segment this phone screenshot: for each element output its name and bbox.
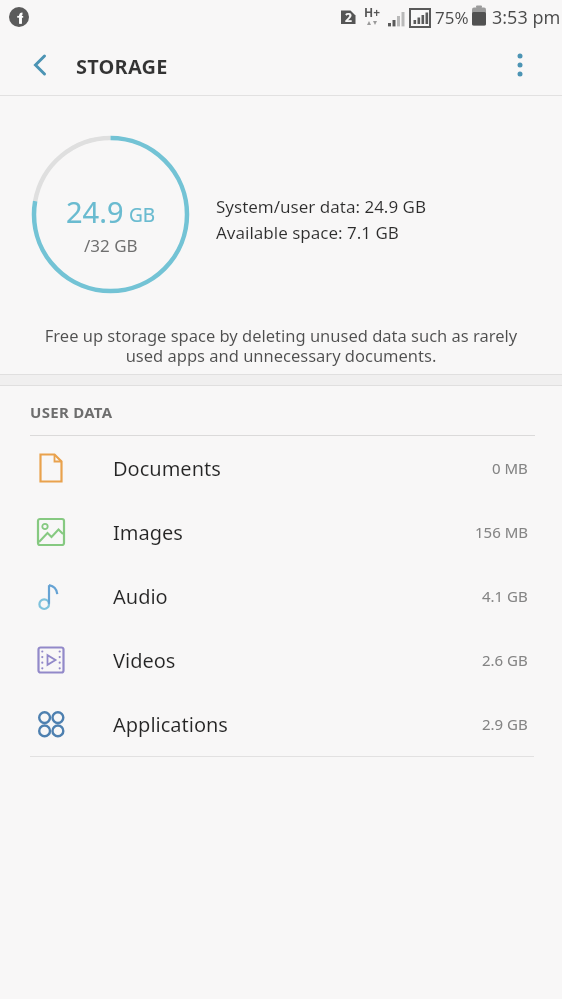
button[interactable]: Documents [0, 436, 562, 500]
button[interactable]: Applications [0, 692, 562, 756]
staticText: 75% [435, 6, 469, 29]
staticText: Images [113, 519, 183, 546]
staticText: Audio [113, 583, 168, 610]
staticText: 2 [345, 9, 352, 25]
staticText: 156 MB [475, 522, 528, 542]
button[interactable]: Videos [0, 628, 562, 692]
staticText: H+ [364, 4, 381, 20]
staticText: GB [124, 202, 156, 228]
staticText: USER DATA [30, 402, 113, 422]
staticText: 4.1 GB [482, 586, 528, 606]
staticText: 0 MB [492, 458, 528, 478]
staticText: Documents [113, 455, 221, 482]
staticText: /32 GB [84, 234, 138, 257]
button[interactable] [20, 45, 60, 85]
staticText: Free up storage space by deleting unused… [0, 324, 562, 367]
staticText: Videos [113, 647, 176, 674]
staticText: Available space: 7.1 GB [216, 221, 399, 244]
staticText: Applications [113, 711, 228, 738]
staticText: 2.6 GB [482, 650, 528, 670]
button[interactable]: Audio [0, 564, 562, 628]
button[interactable]: Images [0, 500, 562, 564]
staticText: STORAGE [76, 53, 168, 80]
staticText: System/user data: 24.9 GB [216, 195, 426, 218]
button[interactable] [500, 45, 540, 85]
staticText: 3:53 pm [492, 5, 561, 30]
staticText: 2.9 GB [482, 714, 528, 734]
staticText: 24.9 [66, 192, 124, 231]
